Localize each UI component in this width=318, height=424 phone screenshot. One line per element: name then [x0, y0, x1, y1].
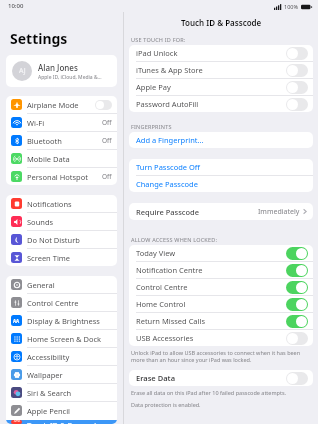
button[interactable]: AA	[6, 312, 117, 329]
staticText: Alan Jones	[38, 62, 78, 73]
button[interactable]: Off	[286, 64, 308, 77]
button[interactable]: Airplane Mode	[6, 96, 117, 113]
staticText: 100%	[284, 3, 299, 10]
staticText: Add a Fingerprint...	[136, 135, 204, 145]
staticText: Bluetooth	[27, 136, 102, 146]
staticText: Settings	[10, 29, 68, 48]
staticText: Today View	[136, 248, 286, 258]
staticText: Require Passcode	[136, 207, 258, 217]
button[interactable]: Off	[95, 100, 112, 110]
staticText: Unlock iPad to allow USB accessories to …	[131, 349, 311, 363]
button[interactable]: Do Not Disturb	[6, 231, 117, 248]
button[interactable]: Accessibility	[6, 348, 117, 365]
staticText: Personal Hotspot	[27, 172, 102, 182]
button[interactable]: Off	[286, 47, 308, 60]
staticText: iTunes & App Store	[136, 65, 286, 75]
button[interactable]: Home Screen & Dock	[6, 330, 117, 347]
button[interactable]: Return Missed Calls	[129, 313, 313, 329]
button[interactable]: USB Accessories	[129, 330, 313, 346]
button[interactable]: Bluetooth	[6, 132, 117, 149]
button[interactable]: Today View	[129, 245, 313, 261]
staticText: Do Not Disturb	[27, 235, 112, 245]
button[interactable]: Change Passcode	[129, 176, 313, 192]
staticText: Home Screen & Dock	[27, 334, 112, 344]
staticText: USB Accessories	[136, 333, 286, 343]
button[interactable]: Off	[286, 98, 308, 111]
button[interactable]: Erase Data	[129, 370, 313, 386]
button[interactable]: General	[6, 276, 117, 293]
button[interactable]: Off	[286, 81, 308, 94]
staticText: Sounds	[27, 217, 112, 227]
staticText: Password AutoFill	[136, 99, 286, 109]
staticText: Siri & Search	[27, 388, 112, 398]
staticText: AA	[13, 318, 20, 324]
staticText: Accessibility	[27, 352, 112, 362]
staticText: General	[27, 280, 112, 290]
staticText: Erase all data on this iPad after 10 fai…	[131, 389, 287, 396]
staticText: Off	[102, 136, 112, 145]
staticText: Change Passcode	[136, 179, 198, 189]
button[interactable]: On	[286, 247, 308, 260]
button[interactable]: Notifications	[6, 195, 117, 212]
staticText: Wi-Fi	[27, 118, 102, 128]
button[interactable]: Control Centre	[129, 279, 313, 295]
button[interactable]: Wallpaper	[6, 366, 117, 383]
button[interactable]: On	[286, 281, 308, 294]
button[interactable]: Personal Hotspot	[6, 168, 117, 185]
staticText: Notification Centre	[136, 265, 286, 275]
button[interactable]: iPad Unlock	[129, 45, 313, 61]
staticText: iPad Unlock	[136, 48, 286, 58]
button[interactable]: Control Centre	[6, 294, 117, 311]
button[interactable]: AJ	[6, 55, 117, 87]
staticText: Screen Time	[27, 253, 112, 263]
staticText: Home Control	[136, 299, 286, 309]
button[interactable]: On	[286, 298, 308, 311]
button[interactable]: Off	[286, 332, 308, 345]
staticText: Display & Brightness	[27, 316, 112, 326]
button[interactable]: On	[286, 264, 308, 277]
button[interactable]: Add a Fingerprint...	[129, 132, 313, 148]
button[interactable]: Apple Pencil	[6, 402, 117, 419]
staticText: ALLOW ACCESS WHEN LOCKED:	[131, 236, 218, 243]
button[interactable]: Sounds	[6, 213, 117, 230]
staticText: AJ	[19, 66, 26, 76]
staticText: Immediately	[258, 207, 300, 217]
staticText: Off	[102, 172, 112, 181]
staticText: Airplane Mode	[27, 100, 95, 110]
staticText: Turn Passcode Off	[136, 162, 200, 172]
button[interactable]: Mobile Data	[6, 150, 117, 167]
staticText: Notifications	[27, 199, 112, 209]
staticText: Return Missed Calls	[136, 316, 286, 326]
button[interactable]: iTunes & App Store	[129, 62, 313, 78]
button[interactable]: Apple Pay	[129, 79, 313, 95]
button[interactable]: Touch ID & Passcode	[6, 420, 117, 424]
staticText: Apple Pencil	[27, 406, 112, 416]
staticText: Touch ID & Passcode	[181, 17, 262, 28]
button[interactable]: Notification Centre	[129, 262, 313, 278]
button[interactable]: On	[286, 315, 308, 328]
staticText: Control Centre	[136, 282, 286, 292]
staticText: Off	[102, 118, 112, 127]
button[interactable]: Require Passcode	[129, 203, 313, 220]
staticText: Touch ID & Passcode	[27, 420, 112, 424]
staticText: Apple Pay	[136, 82, 286, 92]
staticText: FINGERPRINTS	[131, 123, 172, 130]
staticText: Apple ID, iCloud, Media &...	[38, 74, 102, 81]
staticText: Erase Data	[136, 373, 286, 383]
button[interactable]: Siri & Search	[6, 384, 117, 401]
button[interactable]: Password AutoFill	[129, 96, 313, 112]
staticText: USE TOUCH ID FOR:	[131, 36, 186, 43]
button[interactable]: Turn Passcode Off	[129, 159, 313, 175]
button[interactable]: Screen Time	[6, 249, 117, 266]
button[interactable]: Wi-Fi	[6, 114, 117, 131]
button[interactable]: Home Control	[129, 296, 313, 312]
staticText: 10:00	[8, 2, 24, 10]
staticText: Control Centre	[27, 298, 112, 308]
staticText: Data protection is enabled.	[131, 401, 201, 408]
staticText: Wallpaper	[27, 370, 112, 380]
button[interactable]: Off	[286, 372, 308, 385]
staticText: Mobile Data	[27, 154, 112, 164]
